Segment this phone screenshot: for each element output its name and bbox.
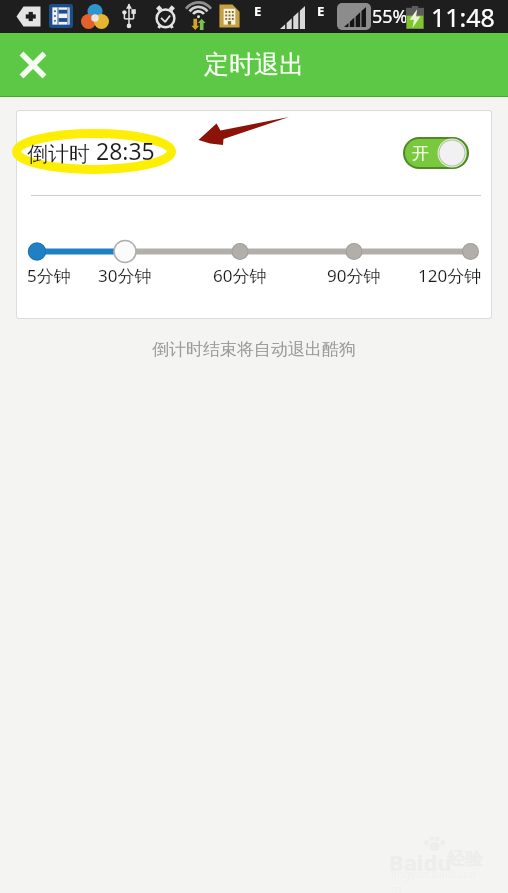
staticText: 开 — [412, 143, 429, 164]
staticText: 经验 — [447, 848, 483, 871]
staticText: 90分钟 — [327, 264, 381, 287]
staticText: E — [254, 2, 262, 20]
staticText: 11:48 — [431, 0, 495, 33]
staticText: 120分钟 — [418, 264, 482, 287]
staticText: E — [317, 2, 325, 20]
button[interactable]: Close — [9, 41, 57, 89]
staticText: 28:35 — [90, 135, 155, 166]
staticText: 倒计时结束将自动退出酷狗 — [0, 339, 508, 360]
staticText: 倒计时 — [27, 141, 90, 167]
staticText: 60分钟 — [213, 264, 267, 287]
staticText: 5分钟 — [27, 264, 71, 287]
staticText: 30分钟 — [98, 264, 152, 287]
staticText: 定时退出 — [204, 49, 304, 80]
staticText: 55% — [372, 4, 408, 29]
button[interactable]: Toggle timer — [403, 137, 469, 169]
